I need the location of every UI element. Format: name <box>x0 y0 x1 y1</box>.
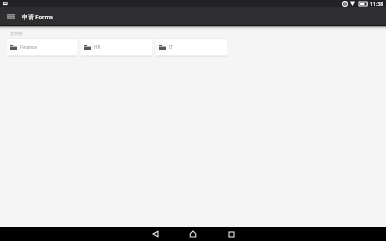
button[interactable]: Home <box>186 227 200 241</box>
staticText: 11:38 <box>370 0 384 7</box>
staticText: 文件夹 <box>10 31 23 36</box>
button[interactable]: IT <box>156 38 227 57</box>
button[interactable]: HR <box>81 38 152 57</box>
button[interactable]: Open navigation menu <box>4 10 18 24</box>
button[interactable]: Recent apps <box>224 227 238 241</box>
button[interactable]: Finance <box>7 38 77 57</box>
staticText: IT <box>169 44 174 50</box>
staticText: HR <box>94 44 101 50</box>
button[interactable]: Back <box>148 227 162 241</box>
staticText: Finance <box>20 44 37 50</box>
staticText: 申请 Forms <box>22 13 53 21</box>
